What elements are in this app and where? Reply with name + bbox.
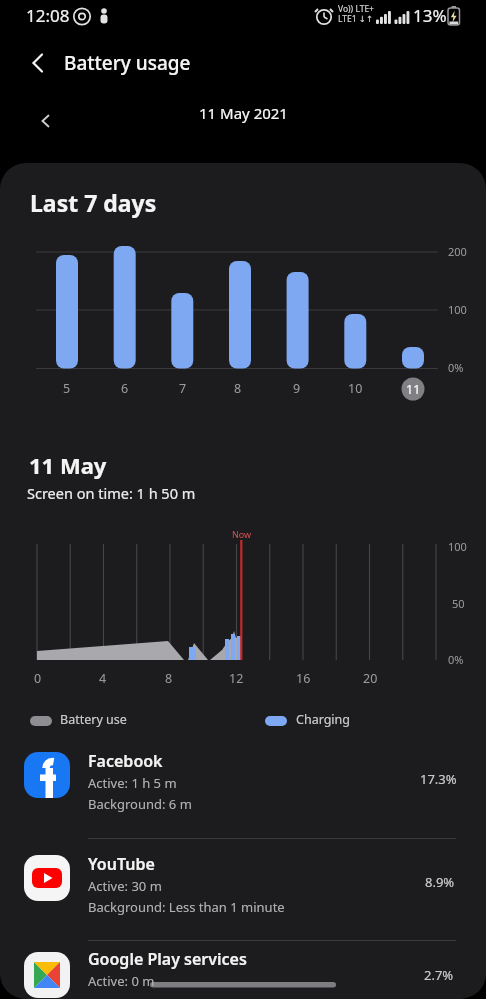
- staticText: Vo)) LTE+: [338, 3, 374, 15]
- staticText: 200: [448, 244, 467, 259]
- staticText: 16: [296, 670, 311, 687]
- staticText: 10: [348, 380, 363, 397]
- staticText: 11: [406, 381, 421, 398]
- staticText: 12:08: [26, 4, 70, 27]
- staticText: Screen on time: 1 h 50 m: [27, 483, 196, 503]
- staticText: 0%: [448, 652, 464, 667]
- staticText: Background: Less than 1 minute: [88, 898, 285, 916]
- staticText: 11 May: [29, 450, 107, 480]
- staticText: Active: 30 m: [88, 877, 162, 895]
- staticText: 9: [293, 380, 301, 397]
- staticText: Background: 6 m: [88, 795, 192, 813]
- staticText: LTE1 ↓↑: [338, 13, 374, 25]
- staticText: 0: [34, 670, 42, 687]
- staticText: Battery usage: [64, 50, 191, 76]
- staticText: Active: 0 m: [88, 972, 155, 990]
- staticText: 6: [121, 380, 129, 397]
- staticText: 8: [165, 670, 173, 687]
- staticText: YouTube: [88, 853, 155, 875]
- button[interactable]: YouTube: [0, 845, 486, 940]
- staticText: 0%: [448, 360, 464, 375]
- staticText: 50: [452, 596, 465, 611]
- staticText: 5: [63, 380, 71, 397]
- staticText: Now: [232, 528, 252, 540]
- staticText: Active: 1 h 5 m: [88, 774, 177, 792]
- staticText: 8.9%: [425, 873, 455, 891]
- staticText: Facebook: [88, 750, 163, 772]
- button[interactable]: [28, 104, 64, 138]
- staticText: 2.7%: [424, 966, 454, 984]
- staticText: Battery use: [60, 711, 127, 728]
- button[interactable]: Google Play services: [0, 942, 486, 999]
- staticText: 17.3%: [420, 770, 457, 788]
- staticText: 100: [448, 539, 467, 554]
- button[interactable]: [16, 42, 60, 82]
- staticText: 4: [99, 670, 107, 687]
- staticText: Last 7 days: [30, 187, 157, 218]
- staticText: 11 May 2021: [199, 103, 288, 123]
- staticText: 7: [179, 380, 187, 397]
- button[interactable]: Facebook: [0, 742, 486, 839]
- staticText: 12: [229, 670, 244, 687]
- staticText: 13%: [413, 4, 447, 27]
- staticText: Google Play services: [88, 948, 247, 970]
- staticText: 20: [363, 670, 378, 687]
- staticText: Charging: [296, 711, 351, 728]
- staticText: 100: [448, 302, 467, 317]
- staticText: 8: [234, 380, 242, 397]
